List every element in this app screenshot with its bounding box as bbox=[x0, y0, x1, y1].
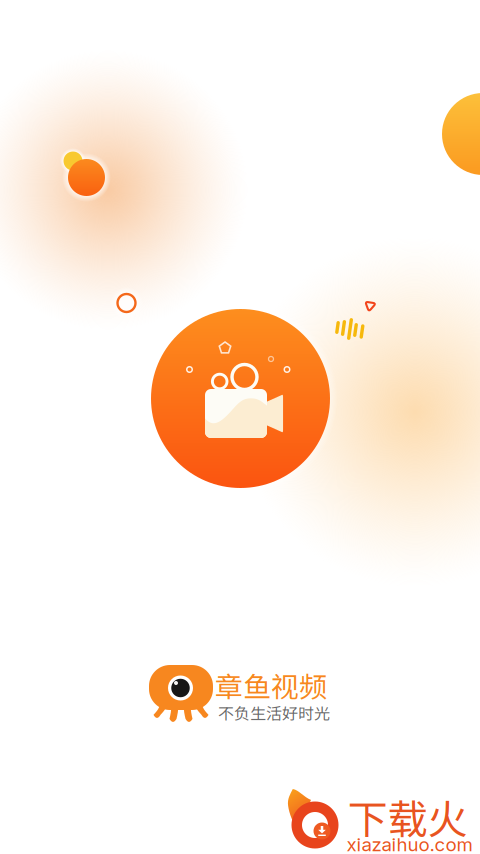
staticText: xiazaihuo.com bbox=[346, 833, 472, 854]
staticText: 章鱼视频 bbox=[215, 665, 327, 705]
staticText: 不负生活好时光 bbox=[218, 701, 330, 724]
staticText: 下载火 bbox=[347, 787, 467, 845]
